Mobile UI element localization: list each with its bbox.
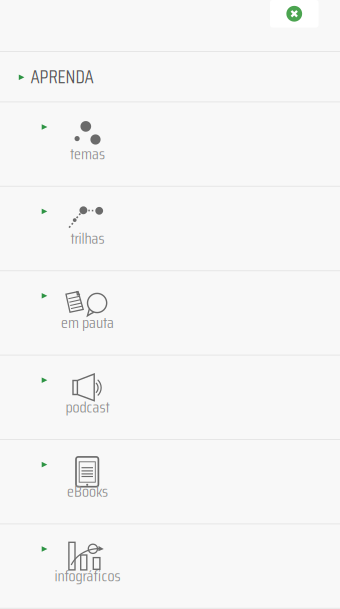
button[interactable]: em pauta: [0, 271, 340, 356]
button[interactable]: infográficos: [0, 524, 340, 609]
staticText: trilhas: [70, 225, 104, 251]
button[interactable]: eBooks: [0, 440, 340, 524]
button[interactable]: podcast: [0, 356, 340, 440]
button[interactable]: temas: [0, 102, 340, 187]
staticText: APRENDA: [30, 62, 93, 91]
button[interactable]: Fechar: [270, 0, 318, 27]
staticText: em pauta: [61, 310, 114, 335]
staticText: eBooks: [67, 479, 108, 504]
button[interactable]: trilhas: [0, 187, 340, 271]
staticText: infográficos: [54, 563, 120, 588]
staticText: podcast: [65, 394, 109, 419]
staticText: temas: [70, 141, 105, 166]
